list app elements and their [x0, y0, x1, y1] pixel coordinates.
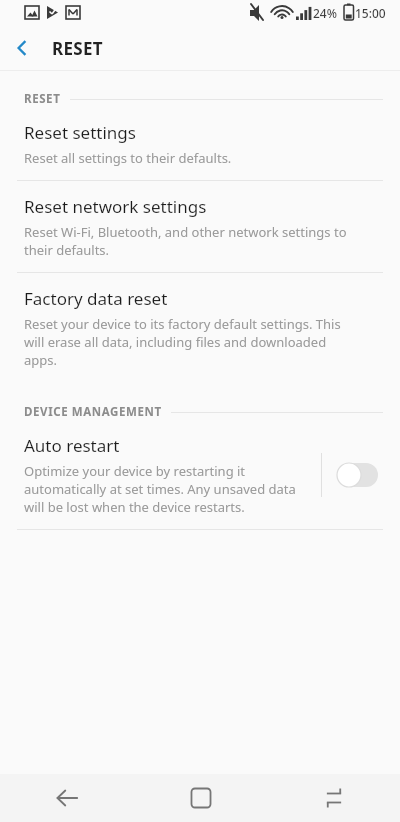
staticText: Optimize your device by restarting it	[24, 462, 246, 480]
button[interactable]: Reset settings	[0, 107, 400, 180]
staticText: automatically at set times. Any unsaved …	[24, 480, 296, 498]
staticText: 15:00	[355, 5, 386, 21]
button[interactable]: Home	[134, 774, 267, 822]
staticText: will erase all data, including files and…	[24, 333, 327, 351]
button[interactable]: Auto restart	[0, 420, 400, 529]
staticText: DEVICE MANAGEMENT	[24, 404, 162, 420]
staticText: Reset all settings to their defaults.	[24, 149, 232, 167]
button[interactable]: Back	[0, 774, 134, 822]
button[interactable]: Back	[0, 26, 44, 70]
staticText: their defaults.	[24, 241, 110, 259]
staticText: Reset Wi-Fi, Bluetooth, and other networ…	[24, 223, 347, 241]
staticText: 24%	[313, 5, 337, 21]
staticText: RESET	[24, 91, 61, 107]
staticText: Auto restart	[24, 434, 120, 457]
button[interactable]: Factory data reset	[0, 273, 400, 382]
button[interactable]: Recents	[267, 774, 400, 822]
staticText: Reset your device to its factory default…	[24, 315, 341, 333]
staticText: will be lost when the device restarts.	[24, 498, 245, 516]
staticText: apps.	[24, 351, 57, 369]
staticText: RESET	[52, 37, 103, 60]
staticText: Reset network settings	[24, 195, 207, 218]
button[interactable]: Reset network settings	[0, 181, 400, 272]
button[interactable]: Auto restart toggle	[334, 460, 380, 490]
staticText: Reset settings	[24, 121, 136, 144]
staticText: Factory data reset	[24, 287, 168, 310]
